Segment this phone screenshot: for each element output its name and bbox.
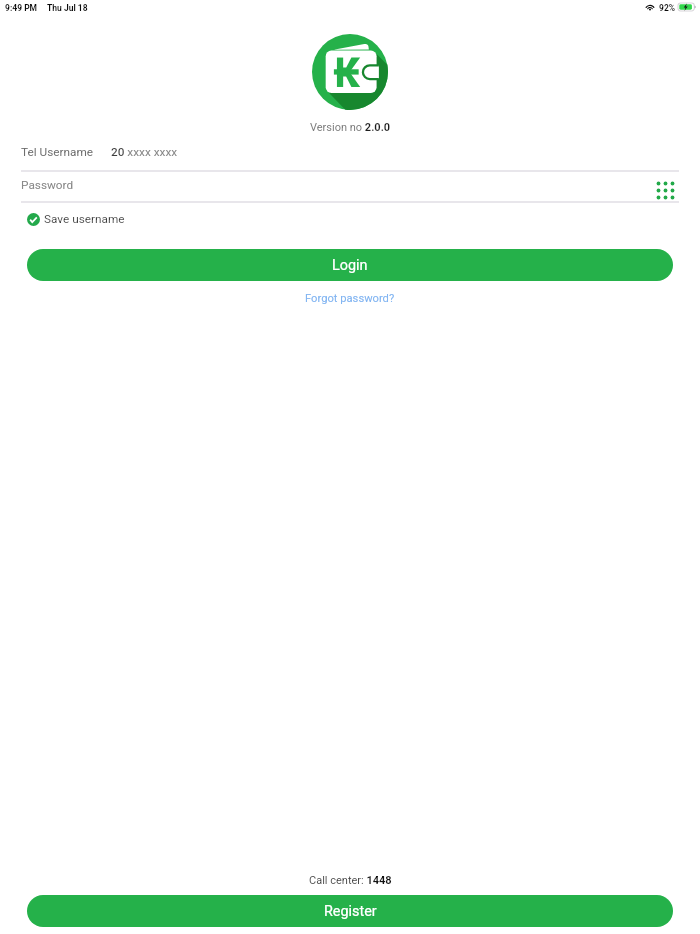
staticText: Call center: 1448 bbox=[309, 874, 392, 887]
staticText: Thu Jul 18 bbox=[47, 3, 88, 13]
staticText: Register bbox=[324, 903, 377, 920]
staticText: 92% bbox=[659, 3, 676, 13]
button[interactable]: Save username bbox=[27, 208, 125, 230]
staticText: Tel Username bbox=[21, 145, 94, 159]
button[interactable]: Tel Username bbox=[0, 135, 700, 168]
button[interactable]: Login bbox=[27, 249, 673, 281]
staticText: Login bbox=[332, 257, 368, 274]
button[interactable]: Register bbox=[27, 895, 673, 927]
staticText: Version no 2.0.0 bbox=[310, 121, 391, 134]
button[interactable]: Forgot password? bbox=[305, 292, 395, 305]
button[interactable]: Show keypad bbox=[655, 180, 676, 201]
staticText: Password bbox=[21, 178, 74, 192]
button[interactable]: Password bbox=[0, 169, 700, 200]
staticText: 9:49 PM bbox=[5, 3, 38, 13]
staticText: Forgot password? bbox=[305, 292, 395, 305]
staticText: 20 xxxx xxxx bbox=[111, 145, 178, 159]
staticText: Save username bbox=[44, 212, 125, 226]
